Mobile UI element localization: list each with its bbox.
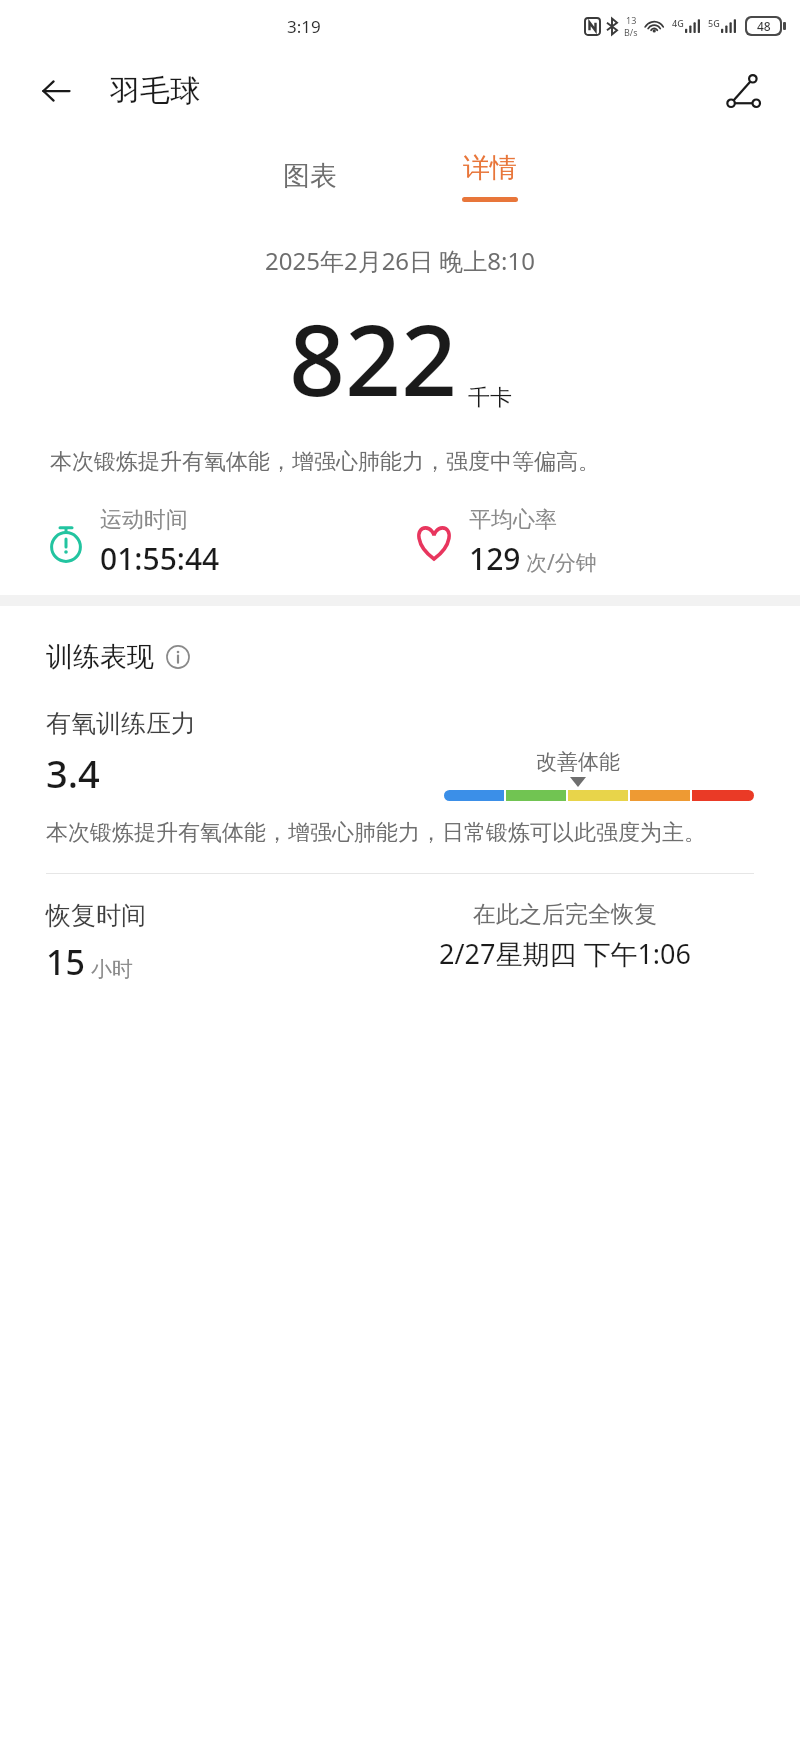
staticText: 本次锻炼提升有氧体能，增强心肺能力，强度中等偏高。 <box>50 448 750 476</box>
staticText: 恢复时间 <box>46 900 146 931</box>
staticText: 次/分钟 <box>526 548 597 577</box>
staticText: 2025年2月26日 晚上8:10 <box>265 244 535 277</box>
staticText: 训练表现 <box>46 640 154 674</box>
staticText: 羽毛球 <box>110 72 200 110</box>
staticText: 本次锻炼提升有氧体能，增强心肺能力，日常锻炼可以此强度为主。 <box>46 819 706 847</box>
button[interactable]: Share <box>718 65 770 117</box>
staticText: 平均心率 <box>469 506 557 534</box>
button[interactable]: 训练表现 <box>46 640 190 674</box>
staticText: 详情 <box>463 151 517 185</box>
staticText: 129 <box>469 538 521 579</box>
button[interactable]: 详情 <box>400 130 580 222</box>
staticText: 在此之后完全恢复 <box>473 900 657 929</box>
button[interactable]: 图表 <box>220 130 400 222</box>
staticText: 运动时间 <box>100 506 188 534</box>
staticText: 千卡 <box>468 384 512 412</box>
staticText: 5G <box>708 17 720 29</box>
staticText: 13 <box>626 14 637 26</box>
staticText: 3.4 <box>46 747 100 799</box>
staticText: 822 <box>289 291 458 424</box>
button[interactable]: 平均心率 <box>413 506 780 579</box>
staticText: 48 <box>757 18 771 34</box>
staticText: 3:19 <box>287 15 321 38</box>
staticText: B/s <box>624 26 638 38</box>
staticText: 2/27星期四 下午1:06 <box>439 935 691 972</box>
button[interactable]: Back <box>34 69 78 113</box>
staticText: 改善体能 <box>536 749 620 775</box>
staticText: 01:55:44 <box>100 538 220 579</box>
staticText: 15 <box>46 939 85 985</box>
button[interactable]: 运动时间 <box>46 506 413 579</box>
staticText: 4G <box>672 17 684 29</box>
staticText: 有氧训练压力 <box>46 708 196 739</box>
staticText: 小时 <box>91 956 133 982</box>
staticText: 图表 <box>283 159 337 193</box>
